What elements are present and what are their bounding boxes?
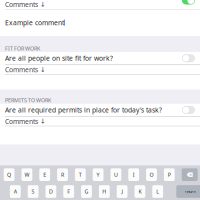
button[interactable]: Toggle answer xyxy=(182,106,195,114)
staticText: R xyxy=(61,171,64,178)
button[interactable]: Are all people on site fit for work? xyxy=(0,52,200,64)
staticText: O xyxy=(149,171,153,178)
staticText: ↓ xyxy=(40,117,46,125)
staticText: ↓ xyxy=(40,1,46,8)
staticText: T xyxy=(79,171,82,178)
staticText: Comments xyxy=(5,117,38,126)
staticText: E xyxy=(43,171,46,178)
button[interactable]: R xyxy=(57,168,68,181)
staticText: I xyxy=(133,171,135,178)
staticText: F xyxy=(67,188,70,195)
staticText: U xyxy=(114,171,118,178)
staticText: K xyxy=(138,188,141,195)
button[interactable]: J xyxy=(117,185,127,198)
button[interactable]: K xyxy=(134,185,145,198)
button[interactable]: W xyxy=(21,168,32,181)
button[interactable]: Comments xyxy=(0,65,200,74)
staticText: return xyxy=(185,189,196,194)
button[interactable]: S xyxy=(28,185,38,198)
staticText: Example comment xyxy=(5,18,64,27)
button[interactable]: G xyxy=(81,185,92,198)
button[interactable]: Toggle answer xyxy=(182,0,195,4)
staticText: L xyxy=(156,188,159,195)
staticText: A xyxy=(14,188,17,195)
button[interactable]: I xyxy=(128,168,139,181)
staticText: P xyxy=(168,171,171,178)
button[interactable]: T xyxy=(75,168,86,181)
button[interactable]: H xyxy=(99,185,110,198)
staticText: PERMITS TO WORK xyxy=(5,97,51,104)
staticText: Comments xyxy=(5,65,38,74)
button[interactable]: Comments xyxy=(0,117,200,126)
staticText: S xyxy=(32,188,35,195)
staticText: W xyxy=(24,171,29,178)
button[interactable]: E xyxy=(39,168,50,181)
button[interactable]: Are all required permits in place for to… xyxy=(0,104,200,116)
staticText: Comments xyxy=(5,0,38,9)
button[interactable]: U xyxy=(110,168,121,181)
staticText: ↓ xyxy=(40,66,46,73)
button[interactable]: A xyxy=(10,185,21,198)
button[interactable]: O xyxy=(146,168,157,181)
button[interactable]: D xyxy=(45,185,56,198)
button[interactable]: Comment field xyxy=(0,10,200,36)
button[interactable]: P xyxy=(164,168,175,181)
staticText: Are all required permits in place for to… xyxy=(5,105,162,114)
staticText: Y xyxy=(97,171,100,178)
button[interactable]: L xyxy=(152,185,163,198)
staticText: Are all people on site fit for work? xyxy=(5,54,113,63)
button[interactable]: Y xyxy=(93,168,103,181)
button[interactable]: Q xyxy=(4,168,14,181)
staticText: D xyxy=(49,188,53,195)
button[interactable]: return xyxy=(176,185,200,198)
staticText: J xyxy=(122,188,123,195)
staticText: H xyxy=(102,188,106,195)
staticText: FIT FOR WORK xyxy=(5,45,40,52)
button[interactable]: Toggle answer xyxy=(182,54,195,62)
staticText: Q xyxy=(7,171,11,178)
button[interactable]: Delete xyxy=(182,168,198,181)
button[interactable]: F xyxy=(63,185,74,198)
staticText: G xyxy=(84,188,88,195)
